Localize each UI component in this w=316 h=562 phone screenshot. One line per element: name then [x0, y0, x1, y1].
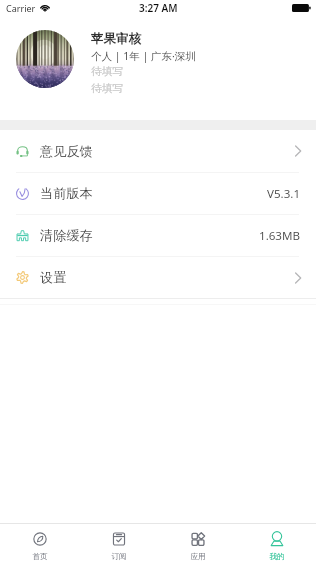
staticText: 个人 | 1年 | 广东·深圳	[91, 49, 196, 63]
staticText: 苹果审核	[91, 31, 141, 47]
button[interactable]: 设置	[0, 257, 316, 298]
button[interactable]: 苹果审核	[0, 20, 316, 120]
button[interactable]: 我的	[237, 524, 316, 562]
button[interactable]: 清除缓存	[0, 215, 316, 256]
button[interactable]: 意见反馈	[0, 130, 316, 172]
staticText: 当前版本	[40, 185, 93, 202]
staticText: 设置	[40, 269, 67, 286]
staticText: 1.63MB	[259, 228, 301, 244]
staticText: 应用	[190, 552, 206, 562]
staticText: 待填写	[91, 82, 124, 96]
button[interactable]: 首页	[0, 524, 79, 562]
staticText: 我的	[269, 552, 285, 562]
staticText: 待填写	[91, 65, 124, 79]
staticText: Carrier	[6, 2, 36, 14]
staticText: 清除缓存	[40, 227, 93, 244]
staticText: V5.3.1	[267, 186, 301, 202]
button[interactable]: 应用	[158, 524, 237, 562]
staticText: 订阅	[111, 552, 127, 562]
staticText: 首页	[32, 552, 48, 562]
button[interactable]: 订阅	[79, 524, 158, 562]
staticText: 意见反馈	[40, 143, 93, 160]
button[interactable]: 当前版本	[0, 173, 316, 214]
staticText: 3:27 AM	[139, 1, 178, 15]
